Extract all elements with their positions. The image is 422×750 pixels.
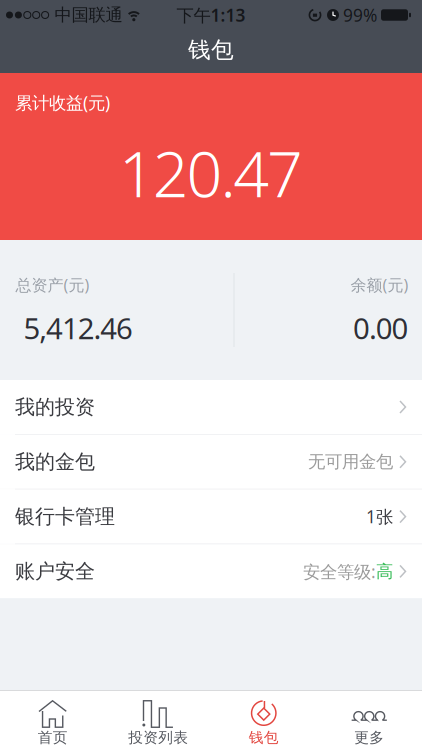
staticText: 我的金包: [15, 449, 95, 474]
button[interactable]: 更多: [316, 691, 422, 750]
staticText: 更多: [354, 728, 384, 746]
button[interactable]: 我的金包: [0, 435, 422, 489]
button[interactable]: 我的投资: [0, 380, 422, 434]
staticText: 5,412.46: [23, 308, 133, 347]
staticText: 高: [376, 561, 393, 582]
staticText: 120.47: [119, 131, 303, 214]
staticText: 中国联通: [55, 4, 123, 26]
staticText: 无可用金包: [308, 451, 393, 472]
staticText: 我的投资: [15, 395, 95, 419]
staticText: 银行卡管理: [15, 504, 115, 529]
button[interactable]: 银行卡管理: [0, 490, 422, 544]
staticText: 下午1:13: [176, 3, 245, 26]
staticText: 投资列表: [128, 728, 188, 746]
staticText: 余额(元): [350, 274, 408, 295]
button[interactable]: 账户安全: [0, 544, 422, 598]
staticText: 钱包: [188, 36, 234, 64]
staticText: 钱包: [249, 728, 279, 746]
button[interactable]: 首页: [0, 691, 105, 750]
staticText: 总资产(元): [15, 274, 89, 295]
staticText: 安全等级:: [303, 560, 376, 583]
staticText: 99%: [343, 3, 377, 26]
staticText: 累计收益(元): [15, 91, 110, 114]
staticText: 0.00: [353, 308, 408, 347]
staticText: 首页: [38, 728, 68, 746]
button[interactable]: 钱包: [211, 691, 316, 750]
staticText: 账户安全: [15, 559, 95, 584]
button[interactable]: 投资列表: [105, 691, 211, 750]
staticText: 1张: [366, 505, 393, 528]
